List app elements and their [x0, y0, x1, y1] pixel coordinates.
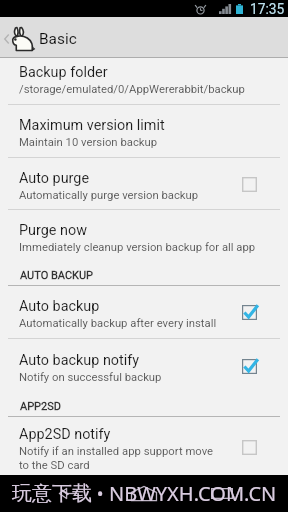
- staticText: App2SD notify: [19, 426, 111, 443]
- button[interactable]: Auto backup: [0, 286, 288, 338]
- staticText: Notify on successful backup: [19, 371, 162, 384]
- staticText: NBWYXH.COM.CN: [109, 480, 277, 507]
- staticText: Auto purge: [19, 170, 90, 187]
- staticText: Auto backup: [19, 298, 100, 315]
- button[interactable]: Auto backup notify: [0, 339, 288, 392]
- button[interactable]: Toggle: [238, 436, 260, 458]
- button[interactable]: Purge now: [0, 210, 288, 261]
- staticText: Auto backup notify: [19, 352, 140, 369]
- button[interactable]: Maximum version limit: [0, 105, 288, 157]
- staticText: /storage/emulated/0/AppWererabbit/backup: [19, 83, 245, 96]
- staticText: 玩意下载: [12, 481, 92, 506]
- button[interactable]: Backup folder: [0, 52, 288, 104]
- button[interactable]: Toggle: [238, 301, 260, 323]
- staticText: Notify if an installed app support move …: [19, 445, 214, 471]
- staticText: Purge now: [19, 222, 88, 239]
- staticText: Maintain 10 version backup: [19, 136, 158, 149]
- staticText: Maximum version limit: [19, 117, 165, 134]
- staticText: APP2SD: [20, 400, 61, 413]
- button[interactable]: Toggle: [238, 355, 260, 377]
- button[interactable]: Toggle: [238, 173, 260, 195]
- staticText: Automatically purge version backup: [19, 189, 199, 202]
- staticText: •: [92, 481, 109, 506]
- button[interactable]: Basic: [0, 17, 288, 57]
- staticText: Automatically backup after every install: [19, 317, 217, 330]
- button[interactable]: Back: [48, 475, 88, 512]
- staticText: Backup folder: [19, 64, 108, 81]
- button[interactable]: App2SD notify: [0, 417, 288, 476]
- staticText: Immediately cleanup version backup for a…: [19, 241, 256, 254]
- button[interactable]: Recents: [202, 475, 242, 512]
- button[interactable]: Home: [124, 475, 164, 512]
- button[interactable]: Auto purge: [0, 158, 288, 209]
- staticText: 17:35: [250, 1, 285, 17]
- staticText: AUTO BACKUP: [20, 269, 94, 282]
- staticText: Basic: [39, 30, 77, 48]
